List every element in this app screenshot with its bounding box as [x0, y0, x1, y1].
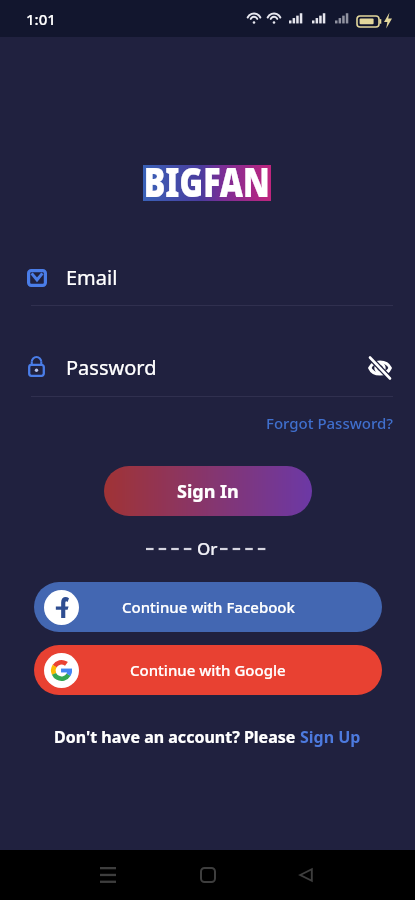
staticText: 1:01: [26, 9, 56, 29]
button[interactable]: Forgot Password?: [258, 407, 402, 439]
staticText: Continue with Google: [130, 660, 286, 680]
staticText: Email: [66, 264, 118, 291]
button[interactable]: Password: [0, 348, 415, 396]
button[interactable]: Toggle password visibility: [364, 352, 396, 384]
staticText: Sign Up: [300, 726, 361, 748]
staticText: Password: [66, 354, 157, 381]
button[interactable]: Home: [185, 852, 231, 898]
button[interactable]: Sign Up: [300, 726, 361, 748]
staticText: Or: [197, 537, 218, 560]
staticText: Continue with Facebook: [122, 597, 295, 617]
button[interactable]: Recent apps: [85, 852, 131, 898]
button[interactable]: Email: [0, 258, 415, 306]
staticText: Forgot Password?: [266, 413, 394, 433]
button[interactable]: Sign In: [104, 466, 312, 516]
staticText: Don't have an account? Please: [54, 726, 300, 748]
staticText: Sign In: [177, 479, 239, 504]
staticText: BIGFAN: [144, 154, 270, 200]
button[interactable]: Back: [283, 852, 329, 898]
button[interactable]: Continue with Google: [34, 645, 382, 695]
button[interactable]: Continue with Facebook: [34, 582, 382, 632]
